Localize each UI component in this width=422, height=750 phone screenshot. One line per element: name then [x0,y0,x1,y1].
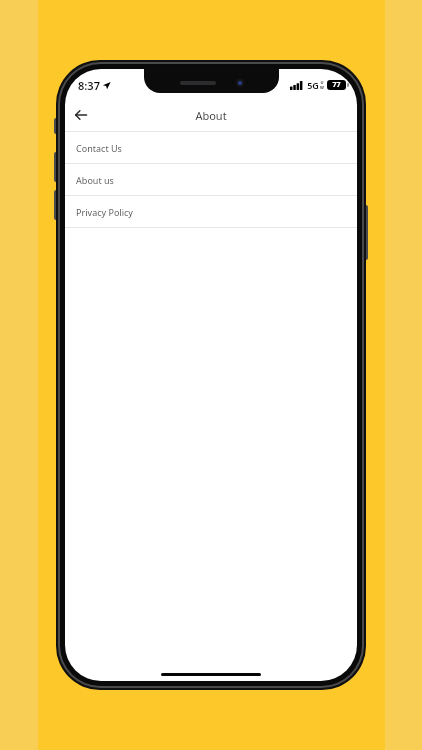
button[interactable]: Contact Us [65,132,357,163]
staticText: 5G [307,79,319,91]
staticText: 8:37 [78,78,100,93]
staticText: Contact Us [76,142,122,154]
button[interactable]: Privacy Policy [65,196,357,227]
staticText: Privacy Policy [76,206,133,218]
staticText: About us [76,174,114,186]
staticText: 77 [332,80,341,90]
button[interactable]: About us [65,164,357,195]
button[interactable]: Back [65,99,97,131]
staticText: U [320,80,324,85]
staticText: W [320,85,324,90]
staticText: About [195,108,227,123]
